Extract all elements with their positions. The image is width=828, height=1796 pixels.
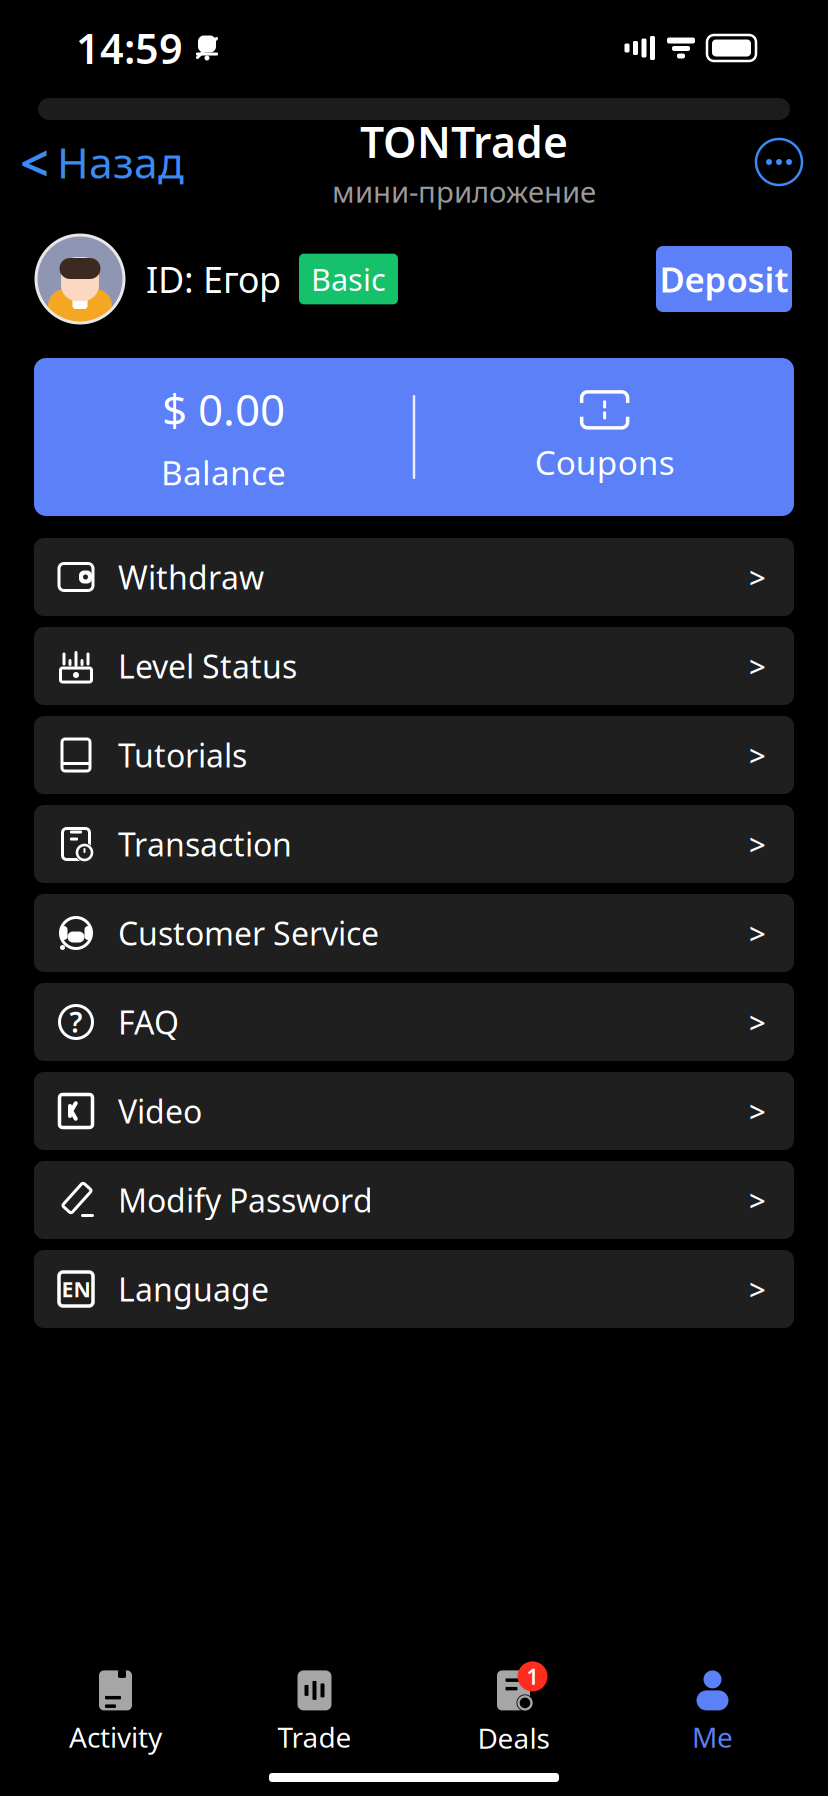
staticText: 1 (526, 1662, 538, 1690)
staticText: Language (118, 1268, 269, 1310)
staticText: Basic (311, 259, 386, 299)
button[interactable]: Transaction (34, 805, 794, 883)
button[interactable]: Me (613, 1668, 812, 1756)
button[interactable]: Trade (215, 1668, 414, 1756)
staticText: Customer Service (118, 912, 379, 954)
staticText: > (749, 1180, 766, 1219)
staticText: Modify Password (118, 1179, 373, 1221)
button[interactable]: Withdraw (34, 538, 794, 616)
button[interactable]: Level Status (34, 627, 794, 705)
staticText: $ 0.00 (162, 380, 285, 438)
staticText: ID: Егор (146, 255, 281, 303)
staticText: Transaction (118, 823, 292, 865)
button[interactable]: More options (756, 139, 828, 185)
button[interactable]: < (0, 120, 184, 204)
button[interactable]: Modify Password (34, 1161, 794, 1239)
staticText: > (749, 1269, 766, 1308)
button[interactable]: $ 0.00 (34, 380, 413, 494)
staticText: > (749, 913, 766, 952)
staticText: Назад (57, 134, 184, 190)
staticText: > (749, 1002, 766, 1041)
staticText: EN (61, 1275, 90, 1303)
staticText: Coupons (535, 440, 675, 484)
staticText: Video (118, 1090, 202, 1132)
staticText: Me (692, 1718, 733, 1756)
button[interactable]: Coupons (415, 390, 794, 484)
staticText: Deposit (659, 256, 788, 302)
staticText: Tutorials (118, 734, 247, 776)
staticText: < (20, 128, 49, 196)
staticText: ? (69, 1003, 82, 1041)
button[interactable]: Video (34, 1072, 794, 1150)
staticText: > (749, 824, 766, 863)
staticText: TONTrade (360, 113, 568, 170)
staticText: FAQ (118, 1001, 179, 1043)
staticText: Withdraw (118, 556, 264, 598)
button[interactable]: ? (34, 983, 794, 1061)
staticText: > (749, 646, 766, 685)
button[interactable]: Activity (16, 1668, 215, 1756)
staticText: мини-приложение (332, 172, 596, 211)
staticText: 14:59 (76, 21, 183, 75)
staticText: Trade (277, 1718, 351, 1756)
button[interactable]: 1 (414, 1667, 613, 1757)
staticText: > (749, 735, 766, 774)
staticText: > (749, 1091, 766, 1130)
staticText: > (749, 557, 766, 596)
staticText: Activity (69, 1718, 162, 1756)
staticText: Deals (477, 1719, 549, 1757)
staticText: Balance (161, 450, 286, 494)
button[interactable]: Tutorials (34, 716, 794, 794)
button[interactable]: Customer Service (34, 894, 794, 972)
button[interactable]: Deposit (656, 246, 792, 312)
button[interactable]: EN (34, 1250, 794, 1328)
staticText: Level Status (118, 645, 297, 687)
